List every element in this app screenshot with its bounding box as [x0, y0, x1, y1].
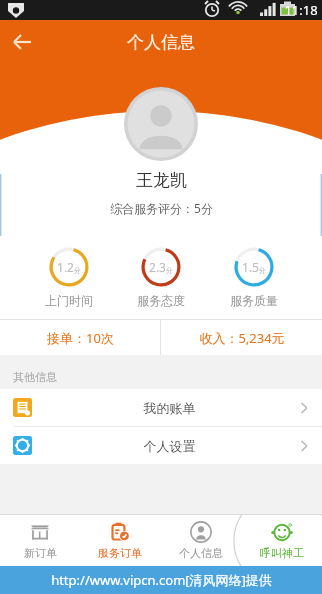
staticText: 其他信息 [13, 370, 57, 384]
staticText: 上门时间 [45, 293, 93, 308]
button[interactable]: 个人信息 [160, 514, 241, 566]
button[interactable]: 个人设置 [0, 427, 322, 464]
staticText: 服务订单 [98, 546, 142, 560]
staticText: 服务态度 [137, 293, 185, 308]
staticText: 个人信息 [127, 32, 195, 53]
button[interactable]: Back [0, 20, 44, 64]
staticText: 分 [74, 266, 81, 275]
staticText: 2.3 [149, 259, 166, 275]
button[interactable]: 呼叫神工 [241, 514, 322, 566]
staticText: 个人信息 [179, 546, 223, 560]
staticText: 综合服务评分：5分 [110, 200, 213, 216]
staticText: 呼叫神工 [260, 546, 304, 560]
staticText: 11:18 [284, 1, 318, 19]
staticText: 个人设置 [43, 438, 296, 454]
staticText: 1.5 [242, 259, 259, 275]
staticText: 服务质量 [230, 293, 278, 308]
staticText: 分 [166, 266, 173, 275]
staticText: 1.2 [57, 259, 74, 275]
staticText: 收入：5,234元 [199, 329, 285, 347]
staticText: 我的账单 [43, 400, 296, 416]
staticText: http://www.vipcn.com[清风网络]提供 [51, 571, 272, 589]
button[interactable]: 服务订单 [80, 514, 160, 566]
staticText: 新订单 [24, 546, 57, 560]
button[interactable]: 新订单 [0, 514, 80, 566]
staticText: 王龙凯 [136, 170, 187, 191]
staticText: 分 [259, 266, 266, 275]
button[interactable]: 我的账单 [0, 389, 322, 426]
staticText: 接单：10次 [47, 329, 114, 347]
